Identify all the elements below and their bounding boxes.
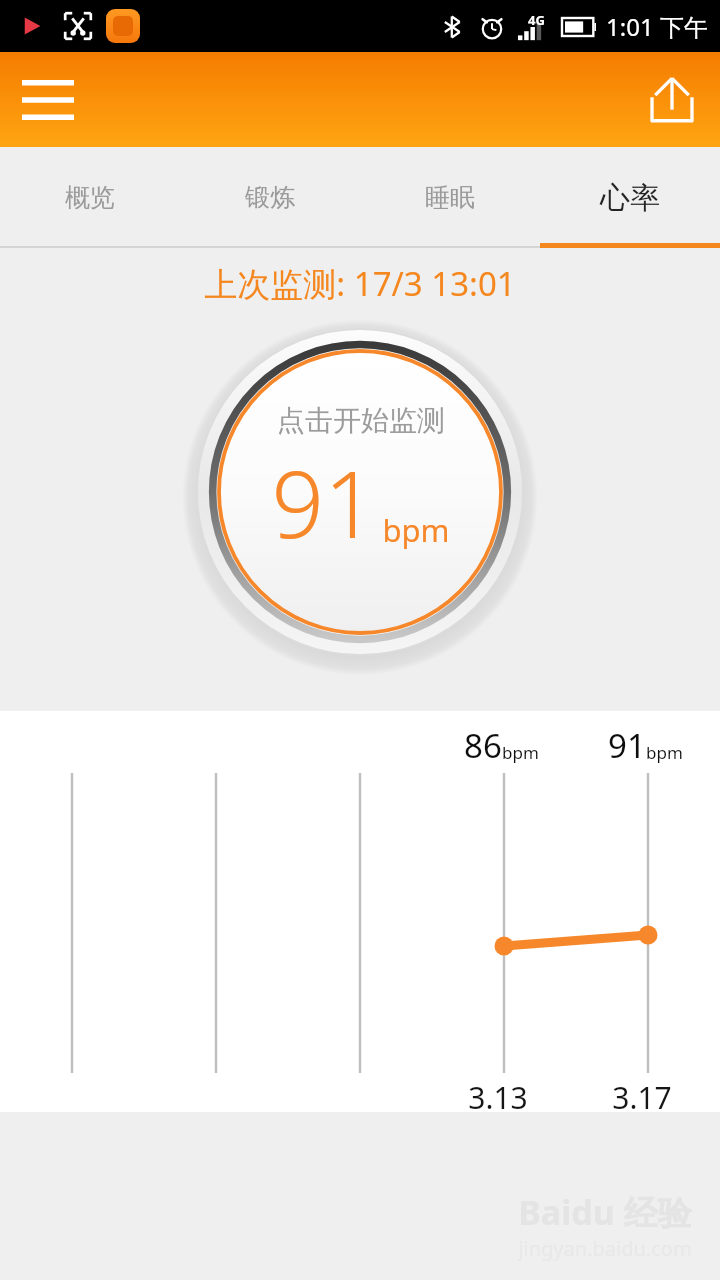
staticText: bpm [502, 741, 539, 764]
button[interactable]: 锻炼 [180, 147, 360, 248]
staticText: 91 [271, 440, 377, 565]
button[interactable]: 睡眠 [360, 147, 540, 248]
button[interactable]: 心率 [540, 147, 720, 248]
staticText: bpm [382, 509, 450, 551]
staticText: 3.17 [612, 1077, 672, 1118]
button[interactable]: Open navigation menu [0, 52, 96, 147]
staticText: 心率 [600, 179, 660, 217]
button[interactable]: 概览 [0, 147, 180, 248]
staticText: 3.13 [468, 1077, 528, 1118]
staticText: 1:01 下午 [606, 10, 708, 43]
button[interactable]: 点击开始监测 [182, 314, 538, 670]
staticText: 点击开始监测 [277, 403, 445, 438]
staticText: 锻炼 [245, 182, 295, 213]
staticText: 睡眠 [425, 182, 475, 213]
staticText: 上次监测: 17/3 13:01 [204, 261, 516, 306]
button[interactable]: Share [624, 52, 720, 147]
staticText: 91 [608, 723, 646, 768]
staticText: 4G [528, 11, 545, 29]
staticText: bpm [646, 741, 683, 764]
staticText: Baidu 经验 [518, 1189, 692, 1235]
staticText: 86 [464, 723, 502, 768]
staticText: 概览 [65, 182, 115, 213]
